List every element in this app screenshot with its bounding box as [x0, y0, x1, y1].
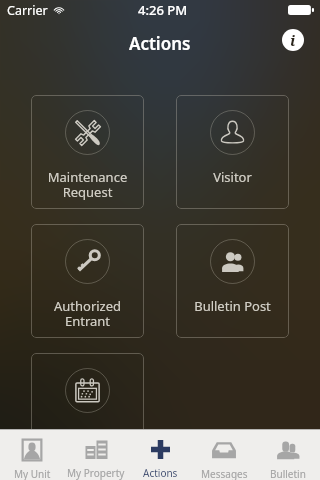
staticText: Messages — [201, 467, 248, 480]
button[interactable]: Messages — [192, 430, 256, 480]
staticText: 4:26 PM — [138, 1, 188, 19]
staticText: Actions — [129, 32, 191, 55]
staticText: i — [290, 30, 296, 50]
staticText: Authorized Entrant — [31, 297, 144, 330]
button[interactable]: My Unit — [0, 430, 64, 480]
button[interactable]: Bulletin Post — [176, 224, 289, 338]
staticText: My Property — [67, 466, 125, 480]
button[interactable]: Calendar — [31, 353, 144, 467]
staticText: Maintenance Request — [31, 168, 144, 201]
staticText: Calendar — [31, 426, 144, 444]
staticText: Bulletin — [270, 467, 306, 480]
staticText: Bulletin Post — [176, 297, 289, 315]
button[interactable]: Visitor — [176, 95, 289, 209]
button[interactable]: My Property — [64, 430, 128, 480]
button[interactable]: Information — [282, 29, 304, 51]
staticText: My Unit — [14, 467, 51, 480]
staticText: Visitor — [176, 168, 289, 186]
button[interactable]: Maintenance Request — [31, 95, 144, 209]
staticText: Actions — [143, 466, 178, 480]
button[interactable]: Actions — [128, 430, 192, 480]
staticText: Carrier — [7, 2, 48, 19]
button[interactable]: Bulletin — [256, 430, 320, 480]
button[interactable]: Authorized Entrant — [31, 224, 144, 338]
